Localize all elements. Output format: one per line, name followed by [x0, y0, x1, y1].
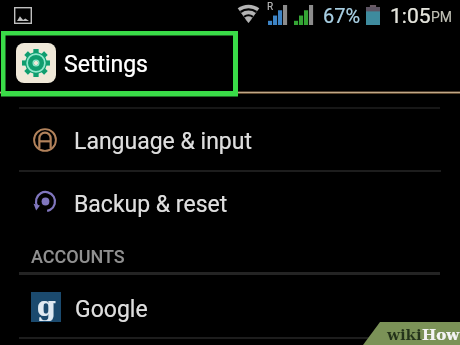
staticText: PM	[431, 9, 453, 25]
staticText: Backup & reset	[74, 191, 228, 218]
staticText: 67%	[323, 4, 361, 27]
staticText: Google	[75, 296, 148, 323]
staticText: Settings	[64, 51, 148, 78]
staticText: Language & input	[74, 128, 252, 155]
staticText: ACCOUNTS	[31, 246, 125, 267]
button[interactable]: g	[0, 278, 460, 336]
button[interactable]: Language & input	[0, 97, 460, 170]
staticText: 1:05	[390, 4, 431, 29]
staticText: R	[267, 1, 274, 13]
button[interactable]: Settings	[0, 33, 460, 91]
staticText: How	[422, 326, 460, 344]
staticText: wiki	[387, 326, 422, 344]
staticText: g	[37, 291, 56, 321]
button[interactable]: Backup & reset	[0, 172, 460, 232]
